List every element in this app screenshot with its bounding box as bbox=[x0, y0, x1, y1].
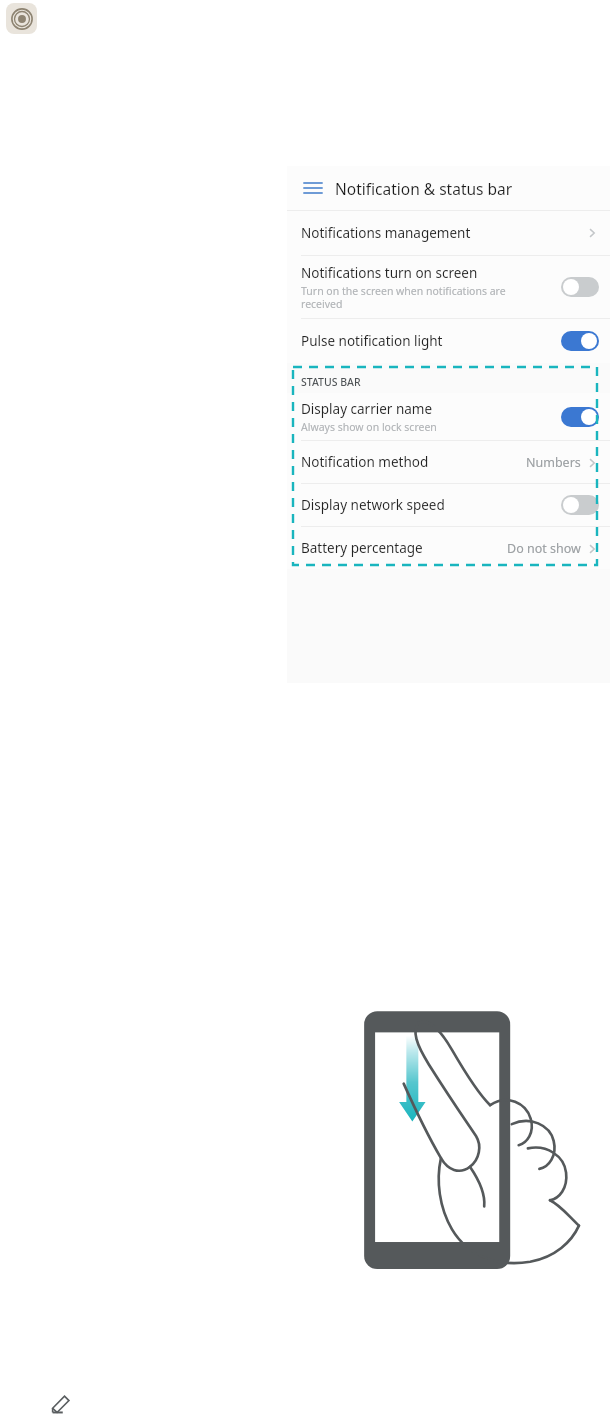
staticText: Do not show bbox=[507, 540, 581, 557]
button[interactable]: Notifications management bbox=[287, 211, 610, 255]
button[interactable]: App icon bbox=[6, 3, 37, 34]
button[interactable]: Toggle on bbox=[561, 331, 599, 351]
staticText: Turn on the screen when notifications ar… bbox=[301, 284, 506, 311]
button[interactable]: Toggle on bbox=[561, 407, 599, 427]
button[interactable]: Notifications turn on screen bbox=[287, 256, 610, 318]
staticText: STATUS BAR bbox=[301, 375, 361, 389]
button[interactable]: Toggle off bbox=[561, 495, 599, 515]
staticText: Display network speed bbox=[301, 496, 445, 514]
staticText: Notifications turn on screen bbox=[301, 264, 478, 282]
staticText: Battery percentage bbox=[301, 539, 423, 557]
button[interactable]: Menu bbox=[299, 174, 327, 202]
staticText: Display carrier name bbox=[301, 400, 433, 418]
staticText: Always show on lock screen bbox=[301, 420, 437, 434]
button[interactable]: Display network speed bbox=[287, 484, 610, 526]
button[interactable]: Display carrier name bbox=[287, 393, 610, 440]
button[interactable]: Notification method bbox=[287, 441, 610, 483]
staticText: Numbers bbox=[526, 454, 581, 471]
staticText: Notification method bbox=[301, 453, 429, 471]
button[interactable]: Battery percentage bbox=[287, 527, 610, 569]
button[interactable]: Edit bbox=[46, 1388, 76, 1418]
button[interactable]: Pulse notification light bbox=[287, 319, 610, 363]
staticText: Notification & status bar bbox=[335, 178, 513, 199]
staticText: Pulse notification light bbox=[301, 332, 443, 350]
button[interactable]: Toggle off bbox=[561, 277, 599, 297]
staticText: Notifications management bbox=[301, 224, 471, 242]
